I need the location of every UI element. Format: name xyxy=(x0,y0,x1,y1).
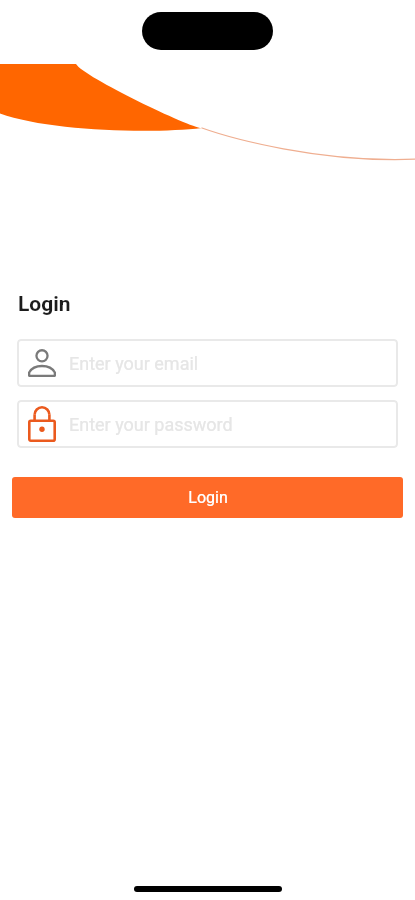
other: Password xyxy=(28,406,56,442)
button[interactable]: Login xyxy=(12,477,403,518)
staticText: Login xyxy=(18,292,71,317)
staticText: Enter your password xyxy=(69,414,233,435)
staticText: Enter your email xyxy=(69,353,199,374)
button[interactable]: Password xyxy=(17,400,398,448)
staticText: Login xyxy=(188,488,228,507)
other: Email xyxy=(28,349,56,377)
button[interactable]: Email xyxy=(17,339,398,387)
